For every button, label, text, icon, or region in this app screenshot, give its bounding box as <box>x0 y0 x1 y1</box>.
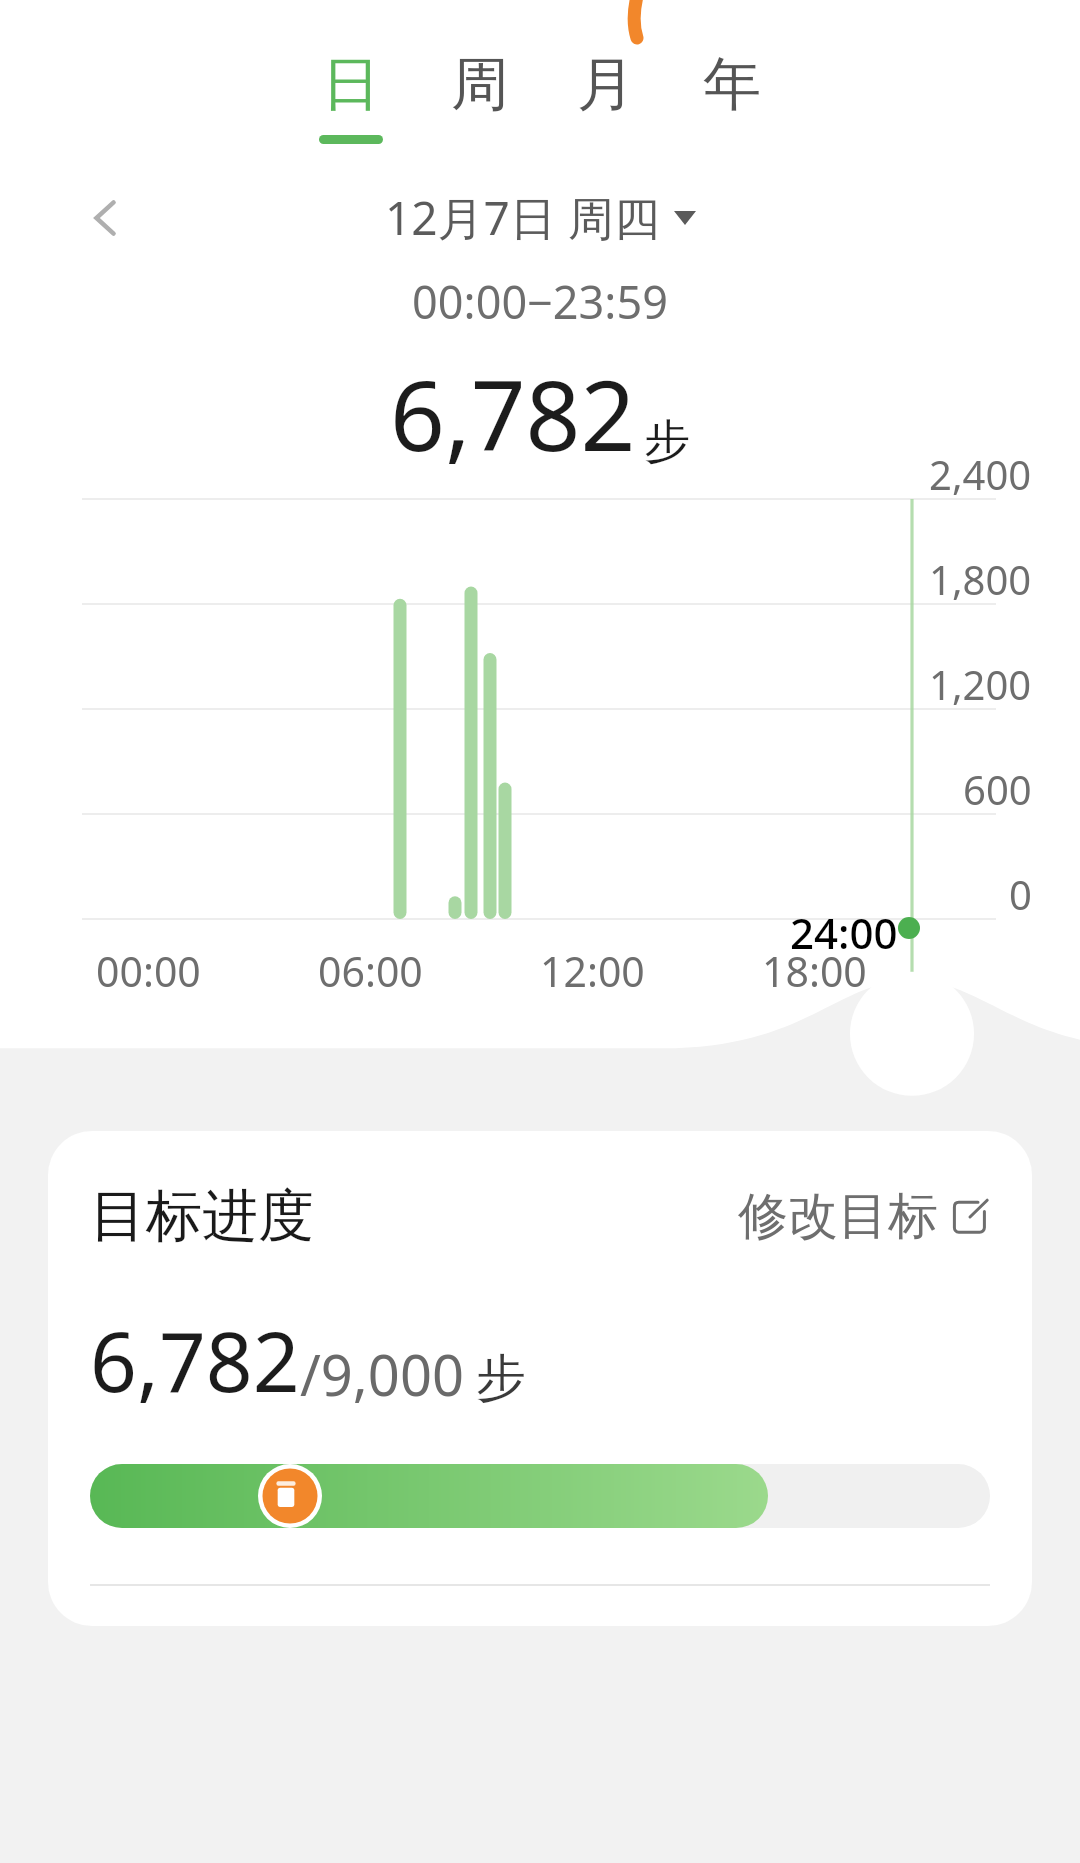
staticText: 步 <box>476 1347 526 1410</box>
staticText: 周 <box>451 48 509 121</box>
staticText: 6,782 <box>390 348 636 479</box>
staticText: 24:00 <box>790 904 898 961</box>
button[interactable]: Previous day <box>72 188 132 248</box>
staticText: 18:00 <box>762 943 867 999</box>
staticText: 1,800 <box>929 552 1032 606</box>
staticText: 月 <box>577 48 635 121</box>
staticText: 0 <box>1009 867 1032 921</box>
button[interactable]: 12月7日 周四 <box>385 186 696 249</box>
staticText: 目标进度 <box>90 1181 314 1252</box>
button[interactable]: 周 <box>451 0 509 144</box>
button[interactable]: 年 <box>703 0 761 144</box>
staticText: 步 <box>644 413 690 471</box>
staticText: 年 <box>703 48 761 121</box>
staticText: 日 <box>322 48 380 121</box>
button[interactable]: 修改目标 <box>738 1185 990 1248</box>
staticText: /9,000 <box>300 1336 464 1412</box>
button[interactable]: 日 <box>319 0 383 144</box>
staticText: 12月7日 周四 <box>385 186 660 249</box>
staticText: 00:00 <box>96 943 201 999</box>
staticText: 12:00 <box>540 943 645 999</box>
staticText: 1,200 <box>929 657 1032 711</box>
staticText: 600 <box>963 762 1032 816</box>
button[interactable]: 月 <box>577 0 635 144</box>
staticText: 6,782 <box>90 1304 300 1416</box>
staticText: 00:00−23:59 <box>0 271 1080 332</box>
staticText: 修改目标 <box>738 1185 938 1248</box>
staticText: 2,400 <box>929 447 1032 501</box>
staticText: 06:00 <box>318 943 423 999</box>
